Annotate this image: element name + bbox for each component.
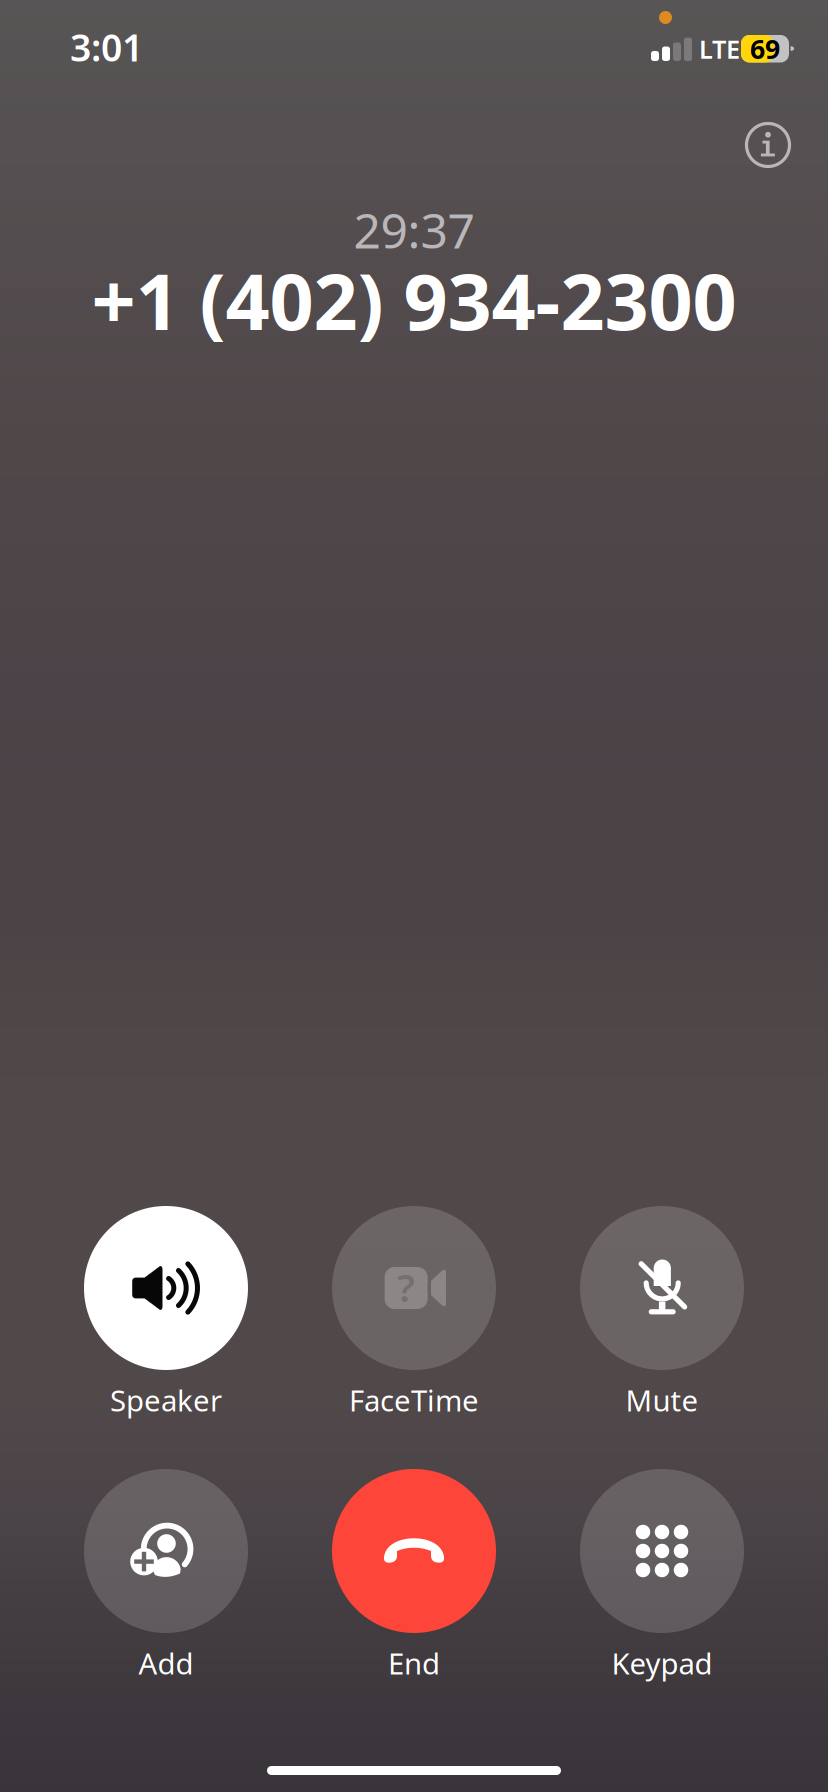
staticText: Keypad — [611, 1643, 712, 1682]
button[interactable]: ? — [308, 1202, 520, 1414]
button[interactable]: Mute — [556, 1202, 768, 1414]
button[interactable]: Keypad — [556, 1465, 768, 1677]
staticText: 29:37 — [353, 198, 474, 262]
staticText: 3:01 — [70, 22, 143, 72]
staticText: Add — [138, 1643, 193, 1682]
staticText: End — [388, 1643, 440, 1682]
staticText: Mute — [625, 1380, 698, 1419]
button[interactable]: Speaker — [60, 1202, 272, 1414]
staticText: FaceTime — [349, 1380, 479, 1419]
button[interactable]: Call info — [733, 110, 803, 180]
staticText: LTE — [699, 32, 740, 66]
staticText: +1 (402) 934-2300 — [91, 249, 736, 351]
button[interactable]: End — [308, 1465, 520, 1677]
staticText: 69 — [750, 31, 780, 66]
button[interactable]: Add — [60, 1465, 272, 1677]
staticText: Speaker — [110, 1380, 222, 1419]
